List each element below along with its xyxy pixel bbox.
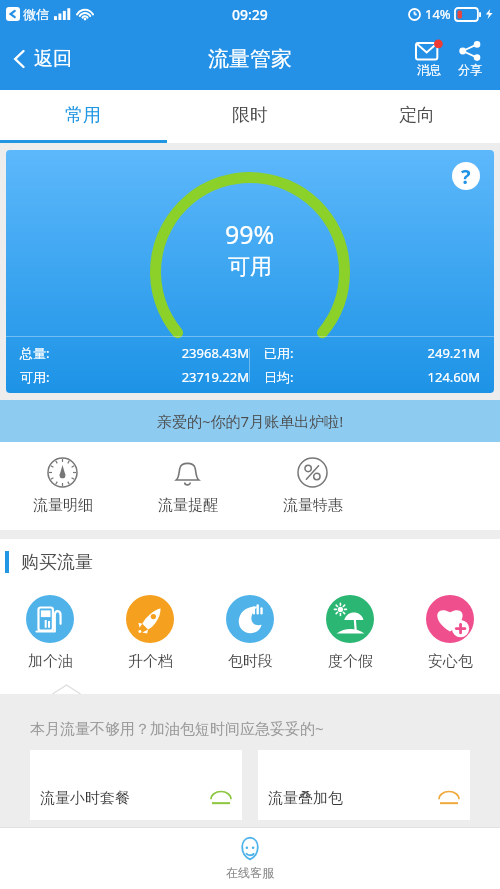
staticText: 流量叠加包 (268, 789, 438, 808)
staticText: 限时 (232, 104, 268, 127)
button[interactable]: 分享 (450, 37, 490, 81)
staticText: 23968.43M (50, 344, 249, 362)
button[interactable]: 流量明细 (0, 442, 125, 530)
button[interactable]: 升个档 (100, 589, 200, 677)
button[interactable]: 返回 (0, 39, 84, 79)
staticText: 安心包 (428, 652, 473, 671)
staticText: 度个假 (328, 652, 373, 671)
staticText: 249.21M (294, 344, 480, 362)
staticText: 购买流量 (21, 551, 93, 574)
button[interactable]: 限时 (166, 90, 333, 140)
staticText: 升个档 (128, 652, 173, 671)
button[interactable]: Help (452, 162, 480, 190)
button[interactable]: 在线客服 (220, 830, 280, 886)
staticText: 流量明细 (33, 496, 93, 515)
button[interactable]: 包时段 (200, 589, 300, 677)
staticText: 14% (425, 5, 451, 23)
button[interactable]: 流量小时套餐 (30, 750, 242, 820)
button[interactable]: 常用 (0, 90, 166, 140)
staticText: 总量: (20, 344, 50, 362)
staticText: 日均: (264, 368, 294, 386)
staticText: 常用 (65, 104, 101, 127)
staticText: 加个油 (28, 652, 73, 671)
staticText: 23719.22M (50, 368, 249, 386)
staticText: 流量小时套餐 (40, 789, 210, 808)
staticText: 消息 (417, 62, 441, 77)
button[interactable]: 加个油 (0, 589, 100, 677)
button[interactable]: Help (6, 150, 494, 393)
button[interactable]: 流量特惠 (250, 442, 375, 530)
button[interactable]: 流量提醒 (125, 442, 250, 530)
button[interactable]: 定向 (333, 90, 500, 140)
staticText: 可用: (20, 368, 50, 386)
staticText: 亲爱的~你的7月账单出炉啦! (157, 411, 344, 431)
staticText: 返回 (34, 47, 72, 71)
staticText: 本月流量不够用？加油包短时间应急妥妥的~ (30, 718, 324, 738)
staticText: 可用 (228, 253, 272, 281)
staticText: 99% (225, 217, 275, 251)
button[interactable]: 亲爱的~你的7月账单出炉啦! (0, 400, 500, 442)
staticText: 在线客服 (226, 865, 274, 880)
button[interactable]: 流量叠加包 (258, 750, 470, 820)
staticText: 124.60M (294, 368, 480, 386)
staticText: 流量特惠 (283, 496, 343, 515)
staticText: 定向 (399, 104, 435, 127)
button[interactable]: 度个假 (300, 589, 400, 677)
staticText: 已用: (264, 344, 294, 362)
staticText: 微信 (23, 6, 49, 22)
staticText: 包时段 (228, 652, 273, 671)
staticText: 09:29 (232, 5, 268, 24)
staticText: ? (461, 163, 471, 190)
button[interactable]: 安心包 (400, 589, 500, 677)
button[interactable]: 消息 (408, 37, 450, 81)
staticText: 流量管家 (208, 46, 292, 72)
staticText: 分享 (458, 62, 482, 77)
staticText: 流量提醒 (158, 496, 218, 515)
